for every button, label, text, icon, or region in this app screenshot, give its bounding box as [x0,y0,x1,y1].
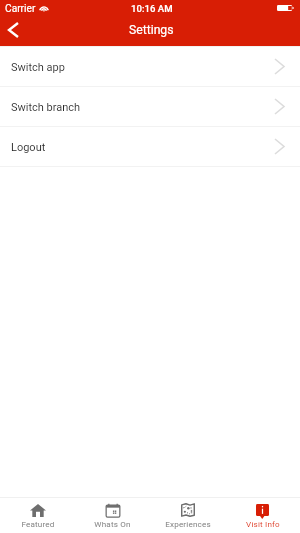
staticText: Logout [11,141,46,154]
staticText: Switch app [11,61,65,74]
staticText: Carrier [5,3,36,15]
button[interactable]: Logout [0,126,300,166]
button[interactable]: Back [0,17,28,45]
button[interactable]: Experiences [150,498,225,533]
staticText: Featured [21,519,55,528]
staticText: Whats On [94,519,131,528]
button[interactable]: Switch app [0,46,300,86]
staticText: Settings [129,23,174,37]
button[interactable]: Switch branch [0,86,300,126]
staticText: Visit Info [246,519,280,528]
staticText: 10:16 AM [131,3,173,14]
button[interactable]: Featured [0,498,75,533]
button[interactable]: Visit Info [225,498,300,533]
staticText: Switch branch [11,101,81,114]
button[interactable]: Whats On [75,498,150,533]
staticText: Experiences [165,519,211,528]
